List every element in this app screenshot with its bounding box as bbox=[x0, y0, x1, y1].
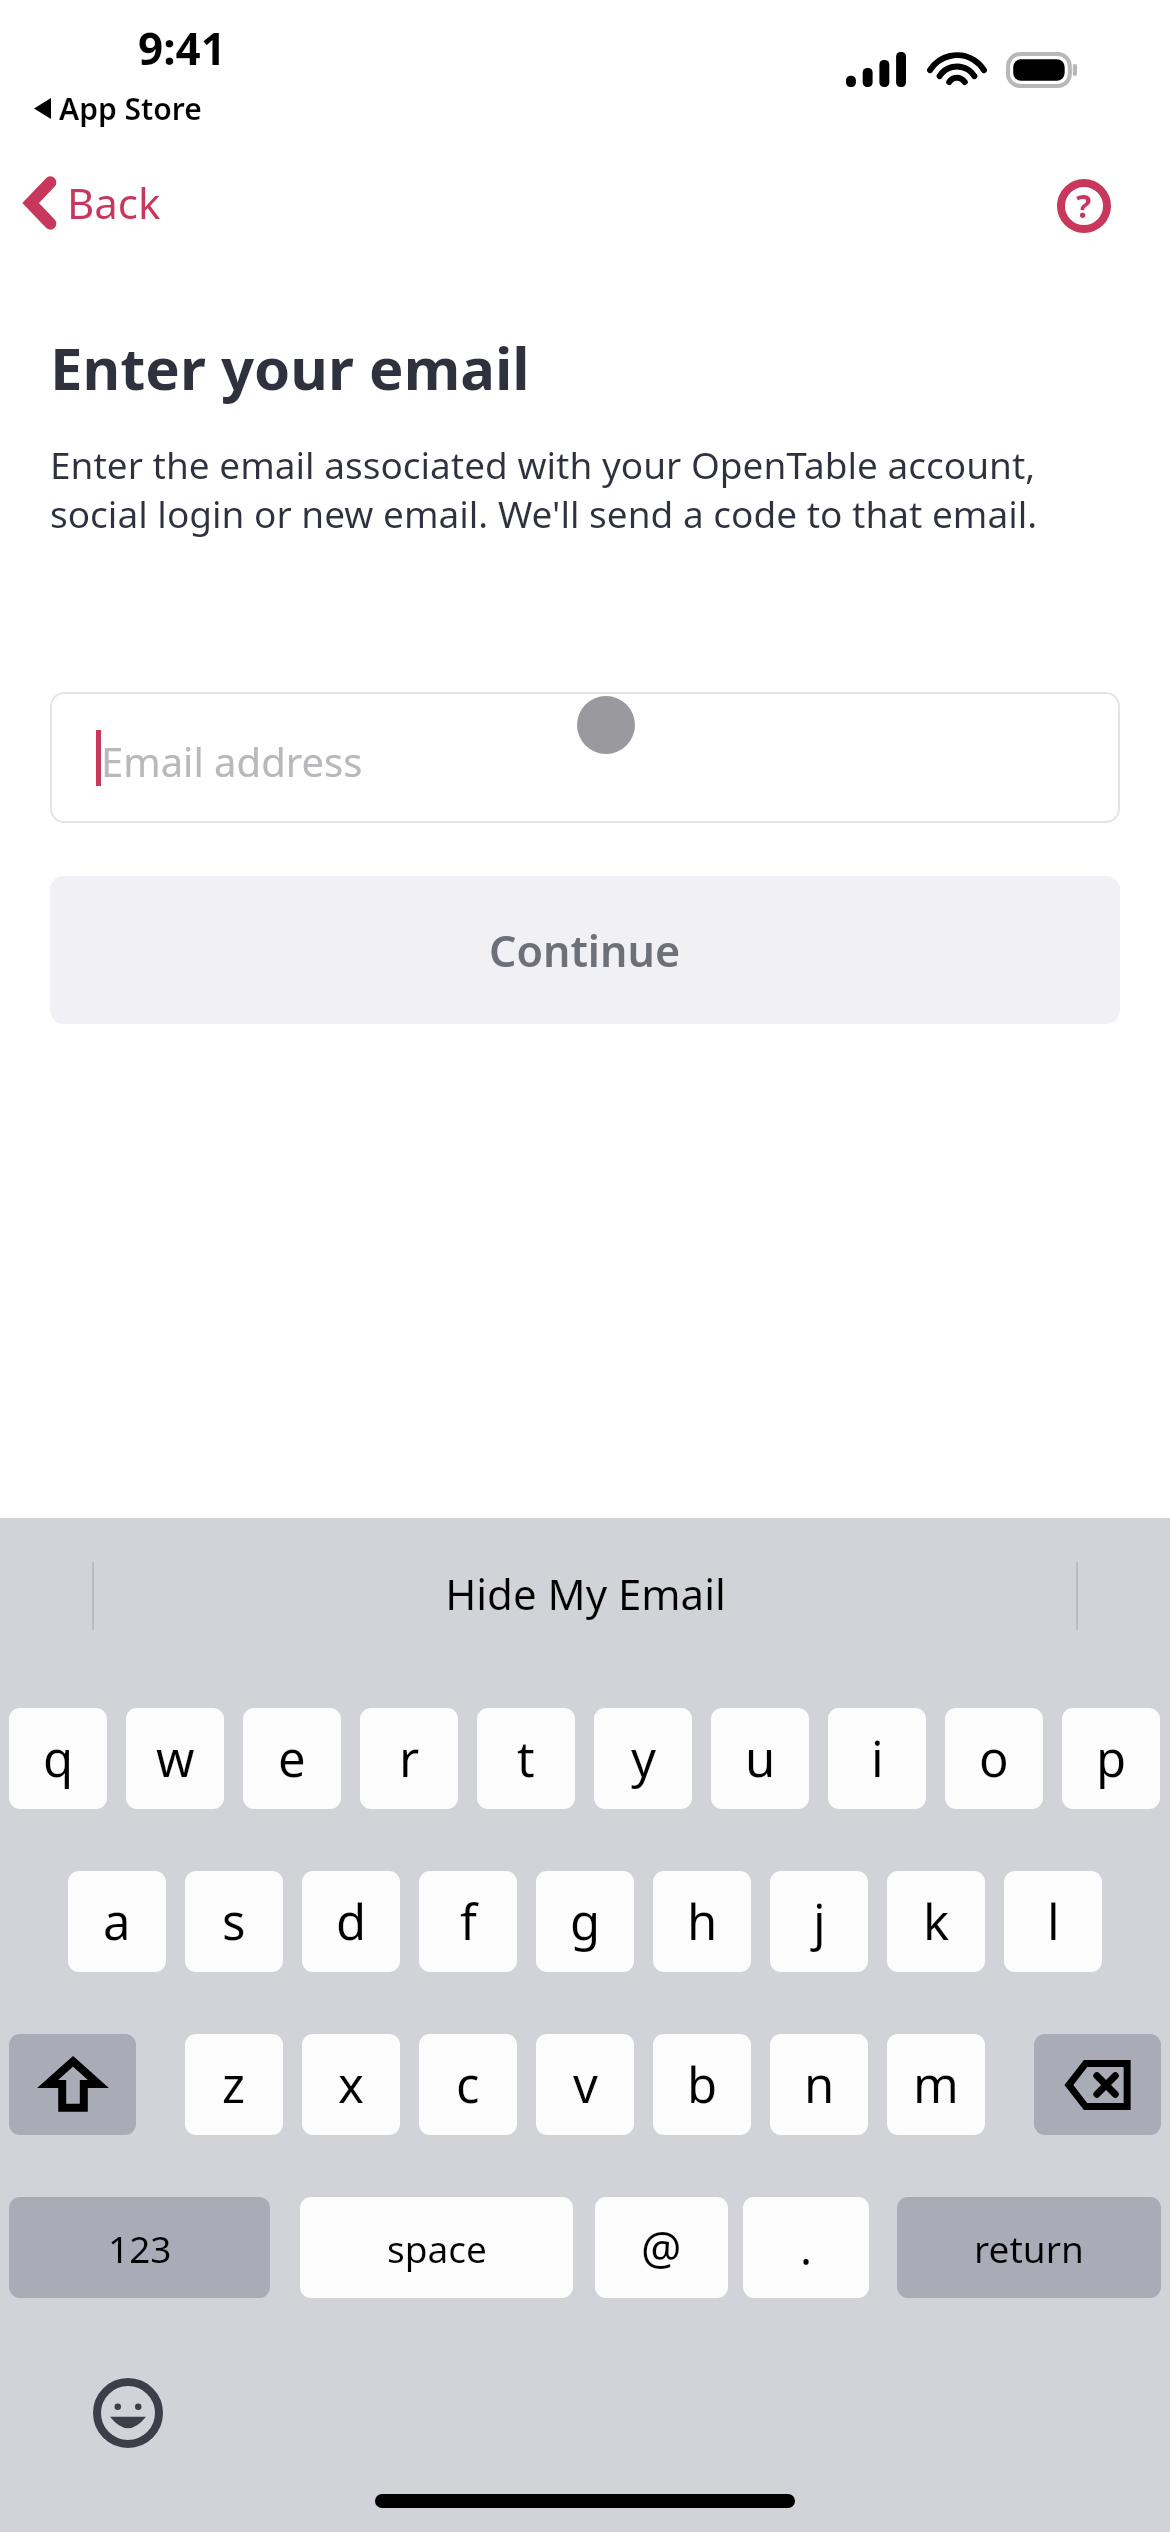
button[interactable]: h bbox=[653, 1871, 751, 1972]
staticText: ? bbox=[1076, 184, 1092, 228]
button[interactable]: return bbox=[897, 2197, 1161, 2298]
button[interactable]: @ bbox=[595, 2197, 728, 2298]
staticText: g bbox=[570, 1888, 601, 1955]
staticText: f bbox=[460, 1888, 477, 1955]
staticText: Email address bbox=[101, 734, 363, 788]
button[interactable]: d bbox=[302, 1871, 400, 1972]
staticText: v bbox=[573, 2051, 598, 2118]
staticText: Continue bbox=[489, 921, 681, 980]
staticText: t bbox=[517, 1725, 535, 1792]
button[interactable]: Back bbox=[16, 166, 173, 239]
button[interactable]: b bbox=[653, 2034, 751, 2135]
staticText: e bbox=[278, 1725, 306, 1792]
staticText: h bbox=[687, 1888, 718, 1955]
button[interactable]: Continue bbox=[50, 876, 1120, 1024]
button[interactable]: x bbox=[302, 2034, 400, 2135]
button[interactable]: 123 bbox=[9, 2197, 270, 2298]
button[interactable]: y bbox=[594, 1708, 692, 1809]
staticText: space bbox=[387, 2223, 487, 2273]
staticText: x bbox=[338, 2051, 364, 2118]
staticText: s bbox=[222, 1888, 246, 1955]
staticText: r bbox=[399, 1725, 420, 1792]
staticText: d bbox=[336, 1888, 367, 1955]
button[interactable]: o bbox=[945, 1708, 1043, 1809]
button[interactable]: f bbox=[419, 1871, 517, 1972]
button[interactable]: Emoji keyboard bbox=[88, 2373, 168, 2453]
button[interactable]: . bbox=[743, 2197, 869, 2298]
staticText: p bbox=[1096, 1725, 1127, 1792]
staticText: z bbox=[222, 2051, 246, 2118]
staticText: Back bbox=[67, 174, 161, 231]
button[interactable]: i bbox=[828, 1708, 926, 1809]
staticText: o bbox=[979, 1725, 1009, 1792]
button[interactable]: q bbox=[9, 1708, 107, 1809]
button[interactable]: v bbox=[536, 2034, 634, 2135]
button[interactable]: p bbox=[1062, 1708, 1160, 1809]
staticText: w bbox=[156, 1725, 195, 1792]
staticText: b bbox=[687, 2051, 718, 2118]
button[interactable]: a bbox=[68, 1871, 166, 1972]
button[interactable]: Help bbox=[1048, 170, 1120, 242]
button[interactable]: z bbox=[185, 2034, 283, 2135]
staticText: n bbox=[804, 2051, 835, 2118]
button[interactable]: r bbox=[360, 1708, 458, 1809]
staticText: l bbox=[1047, 1888, 1060, 1955]
staticText: . bbox=[800, 2217, 813, 2278]
staticText: Enter your email bbox=[50, 328, 530, 407]
button[interactable]: l bbox=[1004, 1871, 1102, 1972]
staticText: j bbox=[813, 1888, 826, 1955]
button[interactable]: g bbox=[536, 1871, 634, 1972]
staticText: i bbox=[871, 1725, 884, 1792]
button[interactable]: n bbox=[770, 2034, 868, 2135]
button[interactable]: Backspace bbox=[1034, 2034, 1161, 2135]
staticText: m bbox=[913, 2051, 959, 2118]
button[interactable]: j bbox=[770, 1871, 868, 1972]
button[interactable]: c bbox=[419, 2034, 517, 2135]
staticText: Enter the email associated with your Ope… bbox=[50, 439, 1130, 539]
staticText: App Store bbox=[59, 88, 202, 129]
button[interactable]: u bbox=[711, 1708, 809, 1809]
staticText: q bbox=[43, 1725, 74, 1792]
button[interactable]: Shift bbox=[9, 2034, 136, 2135]
button[interactable]: Email address bbox=[50, 692, 1120, 823]
button[interactable]: w bbox=[126, 1708, 224, 1809]
button[interactable]: s bbox=[185, 1871, 283, 1972]
staticText: c bbox=[456, 2051, 480, 2118]
staticText: @ bbox=[641, 2217, 682, 2278]
staticText: y bbox=[631, 1725, 656, 1792]
staticText: 9:41 bbox=[138, 18, 226, 78]
staticText: u bbox=[745, 1725, 776, 1792]
staticText: return bbox=[974, 2223, 1084, 2273]
staticText: k bbox=[923, 1888, 950, 1955]
button[interactable]: space bbox=[300, 2197, 573, 2298]
button[interactable]: t bbox=[477, 1708, 575, 1809]
button[interactable]: m bbox=[887, 2034, 985, 2135]
staticText: 123 bbox=[108, 2223, 172, 2273]
button[interactable]: k bbox=[887, 1871, 985, 1972]
button[interactable]: e bbox=[243, 1708, 341, 1809]
staticText: a bbox=[103, 1888, 131, 1955]
button[interactable]: Hide My Email bbox=[445, 1565, 726, 1622]
